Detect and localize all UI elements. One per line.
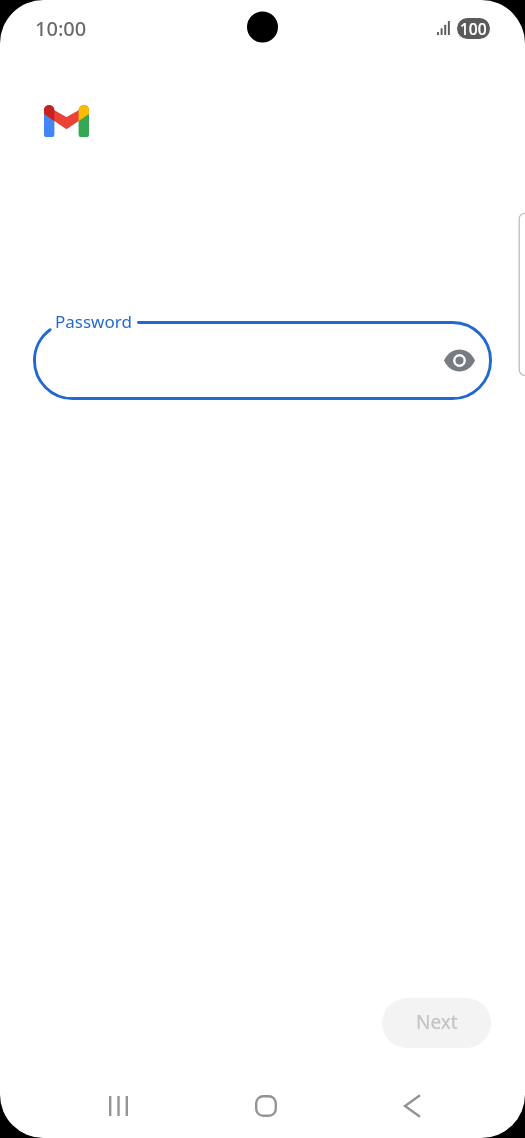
staticText: Next	[416, 1009, 458, 1035]
staticText: 10:00	[35, 15, 87, 42]
button[interactable]: Home	[230, 1074, 302, 1138]
button[interactable]: Show password	[439, 340, 479, 380]
button[interactable]: Back	[376, 1074, 448, 1138]
staticText: Password	[55, 310, 132, 333]
button[interactable]: Recent apps	[82, 1074, 154, 1138]
button[interactable]: Next	[382, 998, 491, 1048]
staticText: 100	[460, 18, 487, 39]
button[interactable]: Password	[33, 321, 492, 400]
